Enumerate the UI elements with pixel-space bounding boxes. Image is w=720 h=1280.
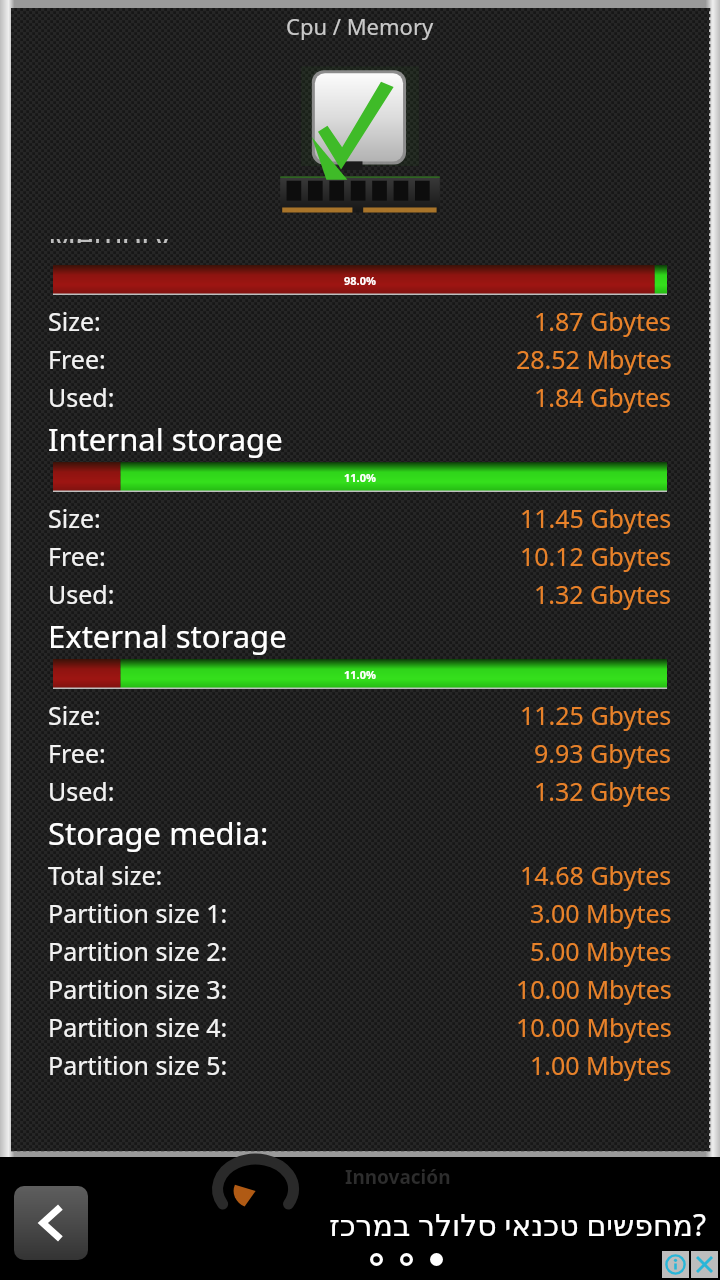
- staticText: Partition size 3:: [48, 972, 228, 1006]
- staticText: 14.68 Gbytes: [520, 858, 672, 892]
- staticText: 11.0%: [344, 667, 376, 682]
- staticText: 1.00 Mbytes: [530, 1048, 672, 1082]
- staticText: Free:: [48, 539, 106, 573]
- staticText: 10.00 Mbytes: [516, 1010, 672, 1044]
- staticText: 1.32 Gbytes: [534, 577, 672, 611]
- button[interactable]: Ad information: [662, 1251, 689, 1278]
- button[interactable]: Used:: [48, 378, 672, 416]
- staticText: Free:: [48, 736, 106, 770]
- staticText: 11.25 Gbytes: [520, 698, 672, 732]
- staticText: Storage media:: [48, 812, 269, 854]
- staticText: 1.84 Gbytes: [534, 380, 672, 414]
- staticText: 11.45 Gbytes: [520, 501, 672, 535]
- button[interactable]: Partition size 3:: [48, 970, 672, 1008]
- staticText: Size:: [48, 304, 101, 338]
- button[interactable]: מחפשים טכנאי סלולר במרכז?: [329, 1204, 706, 1245]
- button[interactable]: Size:: [48, 499, 672, 537]
- staticText: 10.12 Gbytes: [520, 539, 672, 573]
- staticText: Partition size 4:: [48, 1010, 228, 1044]
- staticText: Partition size 5:: [48, 1048, 228, 1082]
- staticText: Used:: [48, 380, 115, 414]
- button[interactable]: Used:: [48, 772, 672, 810]
- button[interactable]: Free:: [48, 734, 672, 772]
- button[interactable]: Total size:: [48, 856, 672, 894]
- button[interactable]: Partition size 5:: [48, 1046, 672, 1084]
- staticText: Partition size 1:: [48, 896, 228, 930]
- staticText: Used:: [48, 577, 115, 611]
- staticText: Cpu / Memory: [286, 11, 434, 41]
- staticText: Size:: [48, 698, 101, 732]
- button[interactable]: Partition size 2:: [48, 932, 672, 970]
- staticText: 9.93 Gbytes: [534, 736, 672, 770]
- staticText: Free:: [48, 342, 106, 376]
- staticText: External storage: [48, 615, 287, 657]
- staticText: 5.00 Mbytes: [530, 934, 672, 968]
- staticText: 1.32 Gbytes: [534, 774, 672, 808]
- staticText: Memory: [48, 239, 170, 243]
- staticText: 3.00 Mbytes: [530, 896, 672, 930]
- staticText: Innovación: [345, 1164, 451, 1190]
- staticText: Total size:: [48, 858, 163, 892]
- staticText: 10.00 Mbytes: [516, 972, 672, 1006]
- staticText: Partition size 2:: [48, 934, 228, 968]
- staticText: Used:: [48, 774, 115, 808]
- button[interactable]: Partition size 1:: [48, 894, 672, 932]
- staticText: 98.0%: [344, 273, 376, 288]
- staticText: 1.87 Gbytes: [534, 304, 672, 338]
- button[interactable]: Free:: [48, 340, 672, 378]
- button[interactable]: Used:: [48, 575, 672, 613]
- button[interactable]: Back: [14, 1186, 88, 1260]
- button[interactable]: Close ad: [691, 1251, 718, 1278]
- staticText: Internal storage: [48, 418, 283, 460]
- button[interactable]: Partition size 4:: [48, 1008, 672, 1046]
- staticText: 11.0%: [344, 470, 376, 485]
- staticText: Size:: [48, 501, 101, 535]
- staticText: 28.52 Mbytes: [516, 342, 672, 376]
- button[interactable]: Size:: [48, 302, 672, 340]
- button[interactable]: Size:: [48, 696, 672, 734]
- button[interactable]: Free:: [48, 537, 672, 575]
